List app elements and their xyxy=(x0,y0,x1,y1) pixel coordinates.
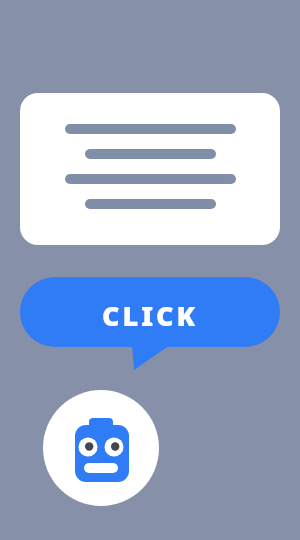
staticText: CLICK xyxy=(20,297,280,334)
button[interactable]: Chatbot assistant xyxy=(43,390,159,506)
button[interactable] xyxy=(20,93,280,245)
button[interactable]: CLICK xyxy=(20,277,280,370)
